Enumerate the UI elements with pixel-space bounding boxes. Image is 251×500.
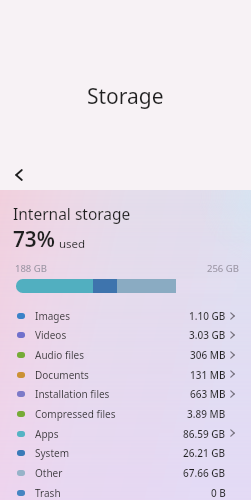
staticText: 256 GB [207,262,239,275]
staticText: 1.10 GB [189,309,226,323]
staticText: 73% [13,225,55,253]
staticText: System [35,446,69,460]
button[interactable]: Apps [0,424,251,444]
staticText: 663 MB [190,387,226,401]
staticText: 3.89 MB [187,407,226,421]
staticText: Audio files [35,348,84,362]
button[interactable]: Back [7,163,31,187]
staticText: Compressed files [35,407,116,421]
staticText: Installation files [35,387,110,401]
staticText: Videos [35,328,67,342]
button[interactable]: Videos [0,325,251,345]
staticText: 0 B [211,486,226,500]
staticText: 188 GB [15,262,47,275]
button[interactable]: Installation files [0,384,251,404]
staticText: Storage [87,82,164,111]
staticText: Images [35,309,70,323]
staticText: Internal storage [13,203,131,224]
staticText: 26.21 GB [183,446,226,460]
button[interactable]: Trash [0,483,251,500]
staticText: Trash [35,486,61,500]
staticText: Documents [35,368,89,382]
staticText: 86.59 GB [183,427,226,441]
button[interactable]: Images [0,306,251,326]
staticText: used [59,236,86,252]
button[interactable]: Audio files [0,345,251,365]
staticText: 3.03 GB [189,328,226,342]
staticText: 306 MB [190,348,226,362]
staticText: 67.66 GB [183,466,226,480]
staticText: 131 MB [190,368,226,382]
button[interactable]: Compressed files [0,404,251,424]
button[interactable]: Documents [0,365,251,385]
button[interactable]: System [0,443,251,463]
button[interactable]: Other [0,463,251,483]
staticText: Apps [35,427,59,441]
staticText: Other [35,466,63,480]
